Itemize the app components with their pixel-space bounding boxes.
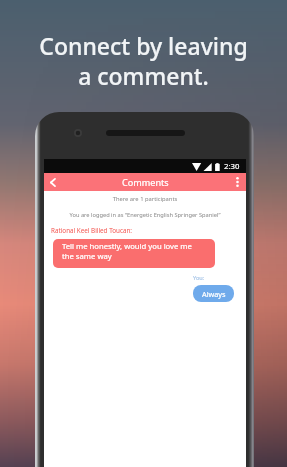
staticText: 2:30 <box>224 161 240 172</box>
staticText: You: <box>193 274 205 282</box>
button[interactable]: Back <box>44 173 61 191</box>
staticText: Tell me honestly, would you love me the … <box>62 241 195 261</box>
button[interactable]: Always <box>193 285 234 302</box>
button[interactable]: More options <box>229 173 246 191</box>
staticText: You are logged in as “Energetic English … <box>44 211 246 219</box>
button[interactable]: Tell me honestly, would you love me the … <box>53 239 215 268</box>
staticText: Comments <box>122 176 169 188</box>
staticText: There are 1 participants <box>44 195 246 203</box>
staticText: Always <box>202 289 226 299</box>
staticText: Connect by leaving a comment. <box>0 30 287 91</box>
staticText: Rational Keel Billed Toucan: <box>51 226 133 235</box>
